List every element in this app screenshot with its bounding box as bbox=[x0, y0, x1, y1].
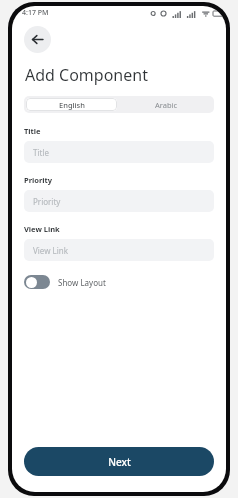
button[interactable]: Arabic bbox=[119, 96, 214, 113]
button[interactable]: Next bbox=[24, 447, 214, 476]
staticText: Title bbox=[33, 147, 49, 158]
button[interactable]: Title bbox=[24, 141, 214, 163]
button[interactable]: Show Layout toggle bbox=[24, 275, 50, 289]
button[interactable]: Priority bbox=[24, 190, 214, 212]
staticText: 4:17 PM bbox=[22, 8, 49, 18]
staticText: Add Component bbox=[25, 64, 148, 86]
staticText: English bbox=[59, 100, 85, 110]
button[interactable]: English bbox=[26, 98, 117, 111]
staticText: Title bbox=[24, 126, 41, 136]
staticText: Arabic bbox=[155, 100, 178, 110]
button[interactable]: Back bbox=[24, 26, 51, 53]
staticText: Priority bbox=[33, 196, 61, 207]
staticText: Next bbox=[108, 455, 131, 469]
staticText: View Link bbox=[24, 224, 60, 234]
staticText: Priority bbox=[24, 175, 53, 185]
staticText: Show Layout bbox=[58, 277, 106, 288]
staticText: View Link bbox=[33, 245, 69, 256]
button[interactable]: View Link bbox=[24, 239, 214, 261]
